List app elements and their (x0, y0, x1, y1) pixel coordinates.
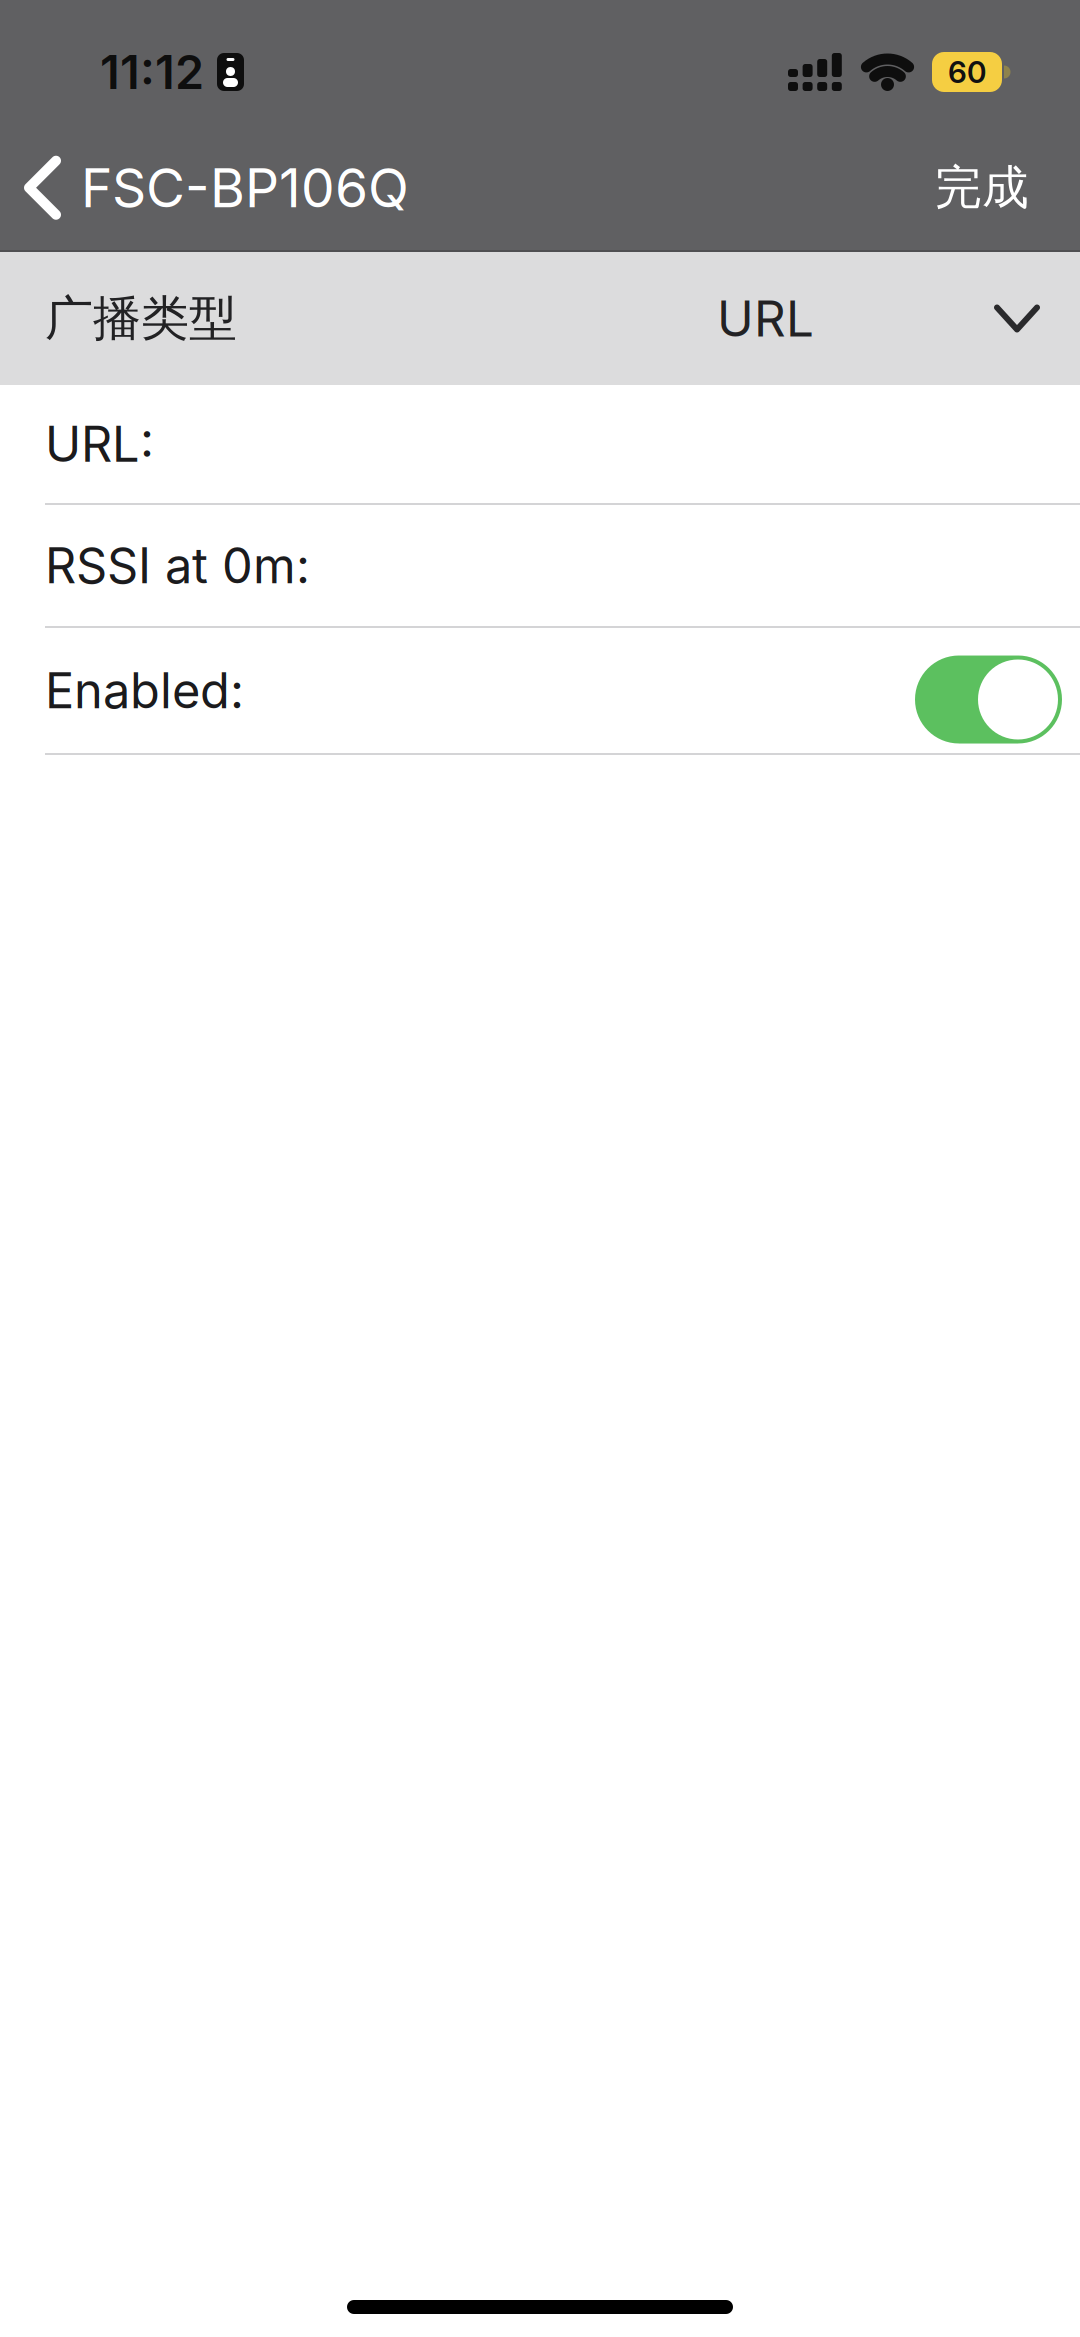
staticText: FSC-BP106Q (81, 155, 409, 220)
staticText: 60 (948, 54, 986, 90)
staticText: RSSI at 0m: (45, 536, 310, 595)
button[interactable]: Back (29, 161, 56, 215)
staticText: 广播类型 (45, 289, 237, 348)
button[interactable]: 广播类型 (0, 252, 1080, 385)
button[interactable]: 完成 (935, 159, 1029, 216)
staticText: Enabled: (45, 661, 244, 720)
staticText: URL (717, 289, 814, 348)
staticText: 11:12 (100, 44, 204, 100)
staticText: 完成 (935, 159, 1029, 216)
button[interactable]: Enabled (915, 655, 1062, 743)
staticText: URL: (45, 415, 154, 473)
